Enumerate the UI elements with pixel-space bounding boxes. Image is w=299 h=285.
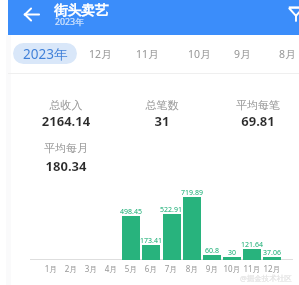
staticText: 2164.14 xyxy=(18,112,114,130)
staticText: 522.91 xyxy=(151,205,191,215)
staticText: 2023年 xyxy=(23,45,68,63)
button[interactable]: 2023年 xyxy=(13,43,77,64)
staticText: 10月 xyxy=(188,47,211,61)
staticText: 60.8 xyxy=(192,246,232,256)
staticText: 69.81 xyxy=(210,112,299,130)
staticText: 4月 xyxy=(91,263,131,274)
staticText: 3月 xyxy=(71,263,111,274)
staticText: 30 xyxy=(212,248,252,258)
button[interactable]: 12月 xyxy=(79,43,121,64)
staticText: 9月 xyxy=(192,263,232,274)
button[interactable]: 10月 xyxy=(178,43,220,64)
button[interactable]: 9月 xyxy=(221,43,263,64)
staticText: 12月 xyxy=(252,263,292,274)
staticText: 11月 xyxy=(136,47,159,61)
staticText: 121.64 xyxy=(232,240,272,250)
button[interactable]: Back xyxy=(10,2,41,33)
staticText: 180.34 xyxy=(18,157,114,175)
staticText: 8月 xyxy=(279,47,296,61)
staticText: 9月 xyxy=(234,47,251,61)
button[interactable]: 总笔数 xyxy=(114,98,210,132)
button[interactable]: 总收入 xyxy=(18,98,114,132)
staticText: 1月 xyxy=(31,263,71,274)
staticText: 31 xyxy=(114,112,210,130)
button[interactable]: 平均每笔 xyxy=(210,98,299,132)
staticText: 总收入 xyxy=(18,98,114,112)
staticText: @掘金技术社区 xyxy=(240,273,292,283)
staticText: 37.06 xyxy=(252,248,292,258)
button[interactable]: 8月 xyxy=(266,43,299,64)
button[interactable]: Filter xyxy=(288,3,299,22)
staticText: 5月 xyxy=(111,263,151,274)
staticText: 平均每月 xyxy=(18,141,114,155)
button[interactable]: 11月 xyxy=(126,43,168,64)
staticText: 173.41 xyxy=(131,236,171,246)
staticText: 10月 xyxy=(212,263,252,274)
staticText: 7月 xyxy=(151,263,191,274)
button[interactable]: 平均每月 xyxy=(18,141,114,177)
staticText: 11月 xyxy=(232,263,272,274)
staticText: 街头卖艺 xyxy=(54,2,108,19)
staticText: 6月 xyxy=(131,263,171,274)
staticText: 12月 xyxy=(89,47,112,61)
staticText: 8月 xyxy=(172,263,212,274)
staticText: 719.89 xyxy=(172,188,212,198)
staticText: 总笔数 xyxy=(114,98,210,112)
staticText: 2月 xyxy=(51,263,91,274)
staticText: 平均每笔 xyxy=(210,98,299,112)
staticText: 2023年 xyxy=(55,16,84,28)
staticText: 498.45 xyxy=(111,207,151,217)
